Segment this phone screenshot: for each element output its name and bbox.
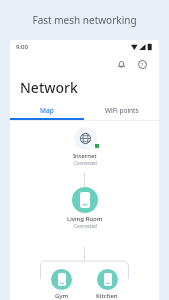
button[interactable]: Gym (51, 269, 72, 300)
button[interactable]: Living Room (67, 187, 103, 229)
staticText: Connected (74, 160, 97, 166)
staticText: Internet (73, 152, 97, 160)
staticText: Gym (55, 292, 69, 300)
button[interactable]: Kitchen (96, 269, 118, 300)
button[interactable]: Notifications (112, 55, 130, 73)
button[interactable]: WiFi points (84, 100, 159, 120)
staticText: Fast mesh networking (32, 13, 137, 27)
button[interactable]: Help (133, 55, 151, 73)
staticText: Kitchen (96, 292, 118, 300)
staticText: Map (40, 106, 54, 115)
button[interactable]: Map (10, 100, 84, 120)
staticText: Network (20, 78, 78, 97)
staticText: ? (141, 61, 144, 68)
staticText: Living Room (67, 215, 103, 223)
staticText: Connected (74, 223, 97, 229)
staticText: WiFi points (105, 106, 139, 115)
button[interactable]: Internet (73, 127, 97, 166)
staticText: 9:00 (16, 43, 28, 51)
